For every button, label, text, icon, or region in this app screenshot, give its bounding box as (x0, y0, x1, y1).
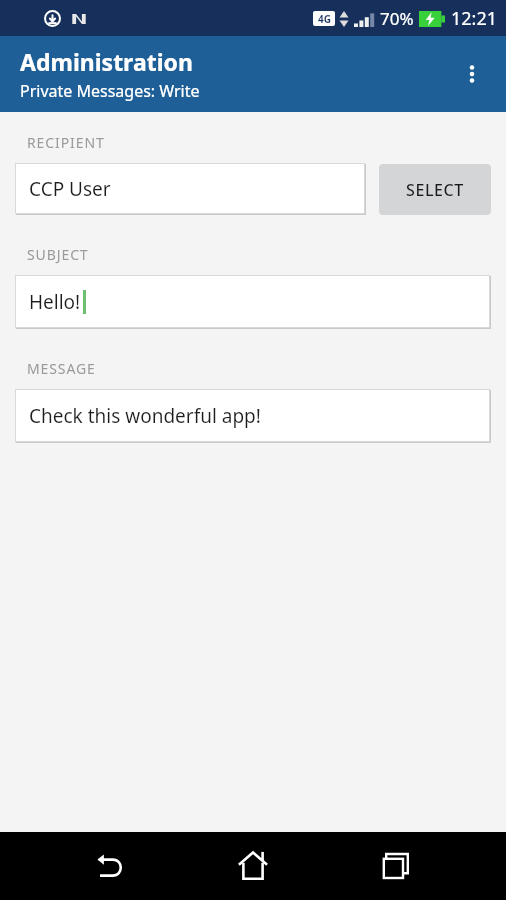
button[interactable]: Check this wonderful app! (15, 389, 491, 443)
staticText: MESSAGE (27, 359, 96, 378)
button[interactable]: Recent apps (362, 832, 432, 900)
staticText: Hello! (29, 289, 81, 315)
staticText: 4G (318, 12, 331, 26)
staticText: Administration (20, 46, 193, 77)
staticText: RECIPIENT (27, 133, 105, 152)
staticText: CCP User (29, 176, 111, 202)
button[interactable]: Home (218, 832, 288, 900)
button[interactable]: Back (74, 832, 144, 900)
staticText: Check this wonderful app! (29, 403, 261, 429)
staticText: 70% (380, 7, 414, 30)
button[interactable]: More options (448, 50, 496, 98)
staticText: 12:21 (451, 6, 498, 31)
staticText: SUBJECT (27, 245, 89, 264)
button[interactable]: Hello! (15, 275, 491, 329)
button[interactable]: CCP User (15, 163, 366, 215)
button[interactable]: SELECT (379, 164, 491, 215)
staticText: Private Messages: Write (20, 80, 200, 102)
staticText: SELECT (406, 179, 464, 201)
